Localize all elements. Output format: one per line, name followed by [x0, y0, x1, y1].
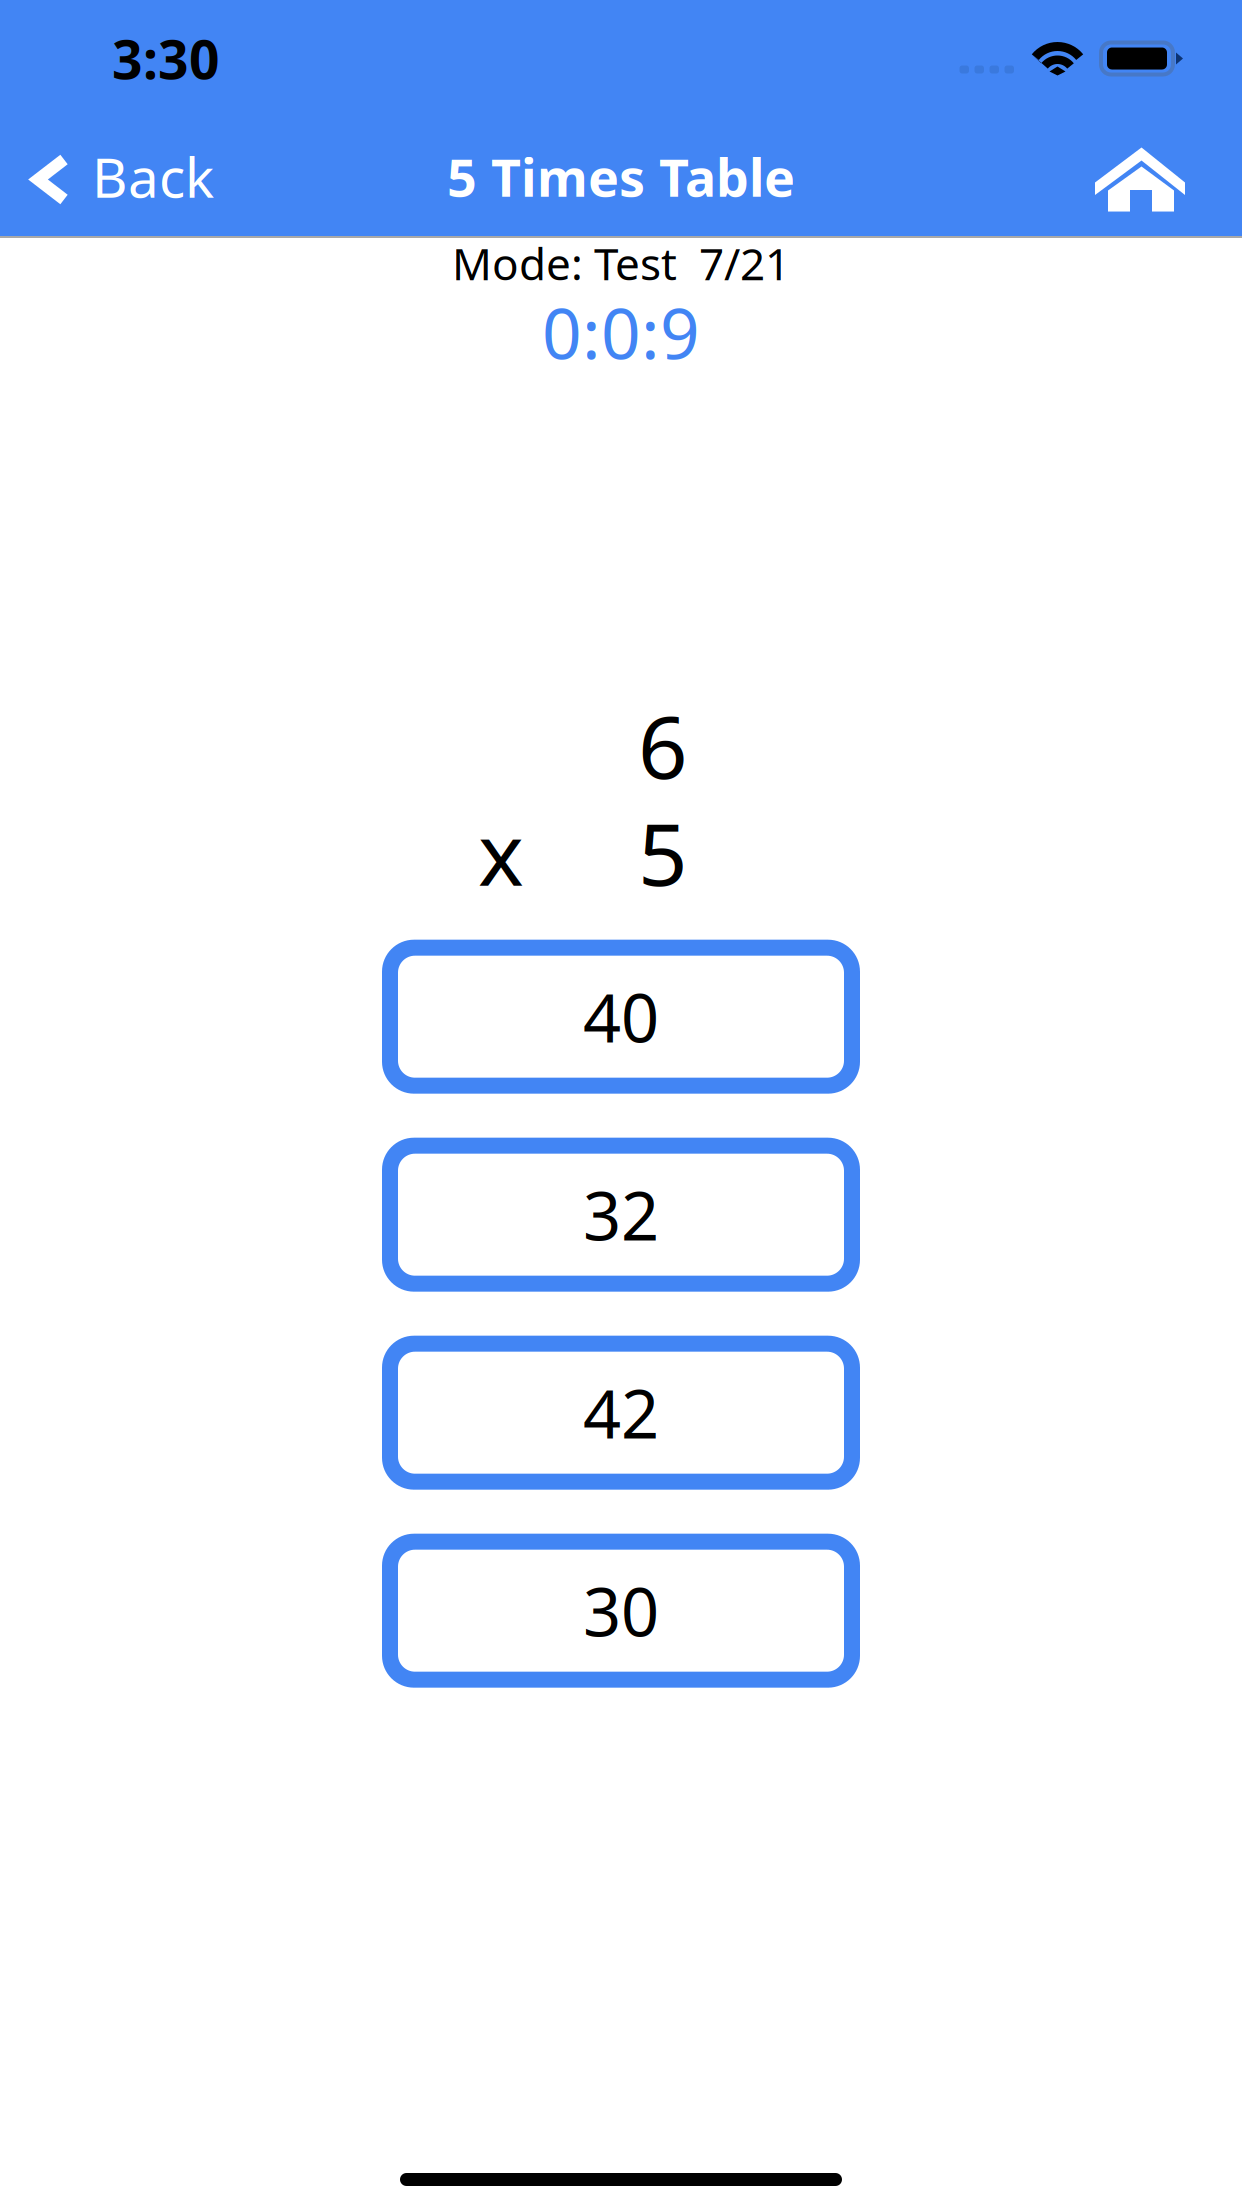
staticText: 30	[583, 1566, 659, 1655]
button[interactable]: 32	[382, 1138, 860, 1292]
staticText: 5 Times Table	[447, 142, 795, 211]
staticText: 40	[583, 972, 659, 1061]
button[interactable]: 42	[382, 1336, 860, 1490]
staticText: 6	[638, 687, 688, 803]
button[interactable]: Back	[0, 117, 236, 236]
staticText: 32	[583, 1170, 659, 1259]
staticText: 5	[638, 795, 688, 910]
staticText: x	[478, 795, 524, 910]
staticText: 0:0:9	[542, 286, 700, 378]
button[interactable]: 40	[382, 940, 860, 1094]
staticText: 42	[583, 1368, 659, 1457]
staticText: Back	[92, 140, 214, 213]
staticText: 3:30	[112, 23, 220, 94]
button[interactable]: Home	[1055, 117, 1242, 236]
staticText: Mode: Test 7/21	[452, 234, 790, 292]
button[interactable]: 30	[382, 1534, 860, 1688]
